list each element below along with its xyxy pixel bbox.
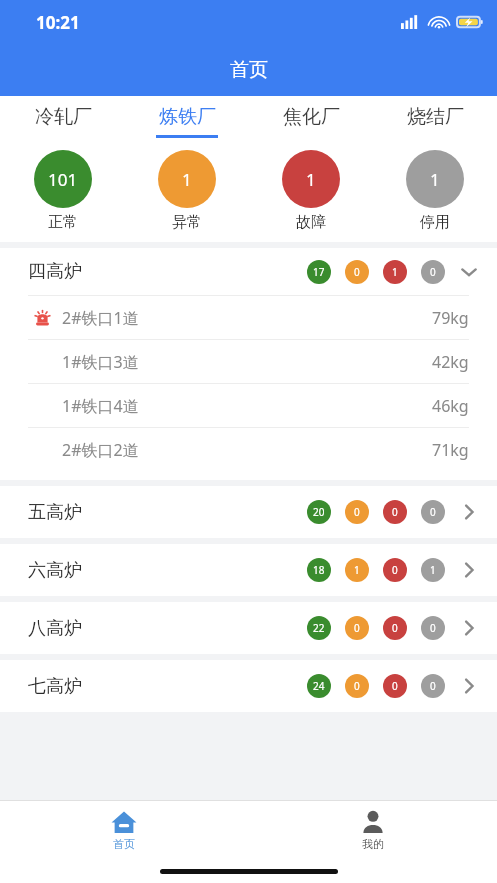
button[interactable]: 我的 <box>248 801 497 859</box>
staticText: 0 <box>430 621 436 635</box>
staticText: 0 <box>354 679 360 693</box>
button[interactable]: 焦化厂 <box>249 96 373 146</box>
staticText: 1 <box>182 168 192 191</box>
staticText: 0 <box>392 563 398 577</box>
staticText: 0 <box>430 505 436 519</box>
staticText: 0 <box>430 265 436 279</box>
other: Open 八高炉 <box>457 616 481 640</box>
button[interactable]: 1 <box>373 150 497 232</box>
button[interactable]: 2#铁口1道 <box>0 296 497 339</box>
staticText: 异常 <box>172 213 202 232</box>
button[interactable]: 2#铁口2道 <box>0 428 497 471</box>
staticText: 0 <box>354 505 360 519</box>
button[interactable]: 六高炉 <box>0 544 497 596</box>
staticText: 0 <box>392 505 398 519</box>
button[interactable]: 1 <box>125 150 249 232</box>
staticText: 1 <box>430 563 436 577</box>
button[interactable]: 七高炉 <box>0 660 497 712</box>
staticText: 22 <box>313 621 325 635</box>
staticText: 0 <box>392 621 398 635</box>
staticText: 1 <box>430 168 440 191</box>
staticText: 1#铁口3道 <box>62 351 432 373</box>
button[interactable]: 101 <box>0 150 125 232</box>
staticText: 1 <box>354 563 360 577</box>
staticText: 焦化厂 <box>283 105 340 129</box>
button[interactable]: 八高炉 <box>0 602 497 654</box>
other: Open 五高炉 <box>457 500 481 524</box>
staticText: 首页 <box>230 58 268 82</box>
staticText: 71kg <box>432 439 469 461</box>
staticText: 故障 <box>296 213 326 232</box>
staticText: 六高炉 <box>28 559 307 582</box>
staticText: 0 <box>354 621 360 635</box>
staticText: 炼铁厂 <box>159 105 216 129</box>
staticText: 17 <box>313 265 325 279</box>
staticText: 四高炉 <box>28 260 307 283</box>
button[interactable]: 炼铁厂 <box>125 96 249 146</box>
staticText: 七高炉 <box>28 675 307 698</box>
other: Open 七高炉 <box>457 674 481 698</box>
staticText: 79kg <box>432 307 469 329</box>
button[interactable]: 冷轧厂 <box>0 96 125 146</box>
staticText: 0 <box>354 265 360 279</box>
staticText: 首页 <box>113 837 135 851</box>
staticText: 八高炉 <box>28 617 307 640</box>
staticText: 0 <box>430 679 436 693</box>
other: Open 六高炉 <box>457 558 481 582</box>
staticText: 正常 <box>48 213 78 232</box>
staticText: 20 <box>313 505 325 519</box>
staticText: 2#铁口2道 <box>62 439 432 461</box>
button[interactable]: 五高炉 <box>0 486 497 538</box>
staticText: 1 <box>392 265 398 279</box>
other: Collapse <box>457 260 481 284</box>
staticText: 2#铁口1道 <box>62 307 432 329</box>
staticText: 46kg <box>432 395 469 417</box>
staticText: 停用 <box>420 213 450 232</box>
button[interactable]: 烧结厂 <box>373 96 497 146</box>
staticText: 18 <box>313 563 325 577</box>
button[interactable]: 1#铁口4道 <box>0 384 497 427</box>
button[interactable]: 1#铁口3道 <box>0 340 497 383</box>
staticText: 冷轧厂 <box>35 105 92 129</box>
staticText: 1 <box>306 168 316 191</box>
staticText: 0 <box>392 679 398 693</box>
staticText: 42kg <box>432 351 469 373</box>
button[interactable]: 四高炉 <box>0 248 497 295</box>
staticText: 101 <box>48 168 78 191</box>
staticText: 五高炉 <box>28 501 307 524</box>
staticText: 10:21 <box>36 11 80 34</box>
button[interactable]: 首页 <box>0 801 248 859</box>
staticText: 烧结厂 <box>407 105 464 129</box>
staticText: 1#铁口4道 <box>62 395 432 417</box>
staticText: 24 <box>313 679 325 693</box>
button[interactable]: 1 <box>249 150 373 232</box>
staticText: 我的 <box>362 837 384 851</box>
